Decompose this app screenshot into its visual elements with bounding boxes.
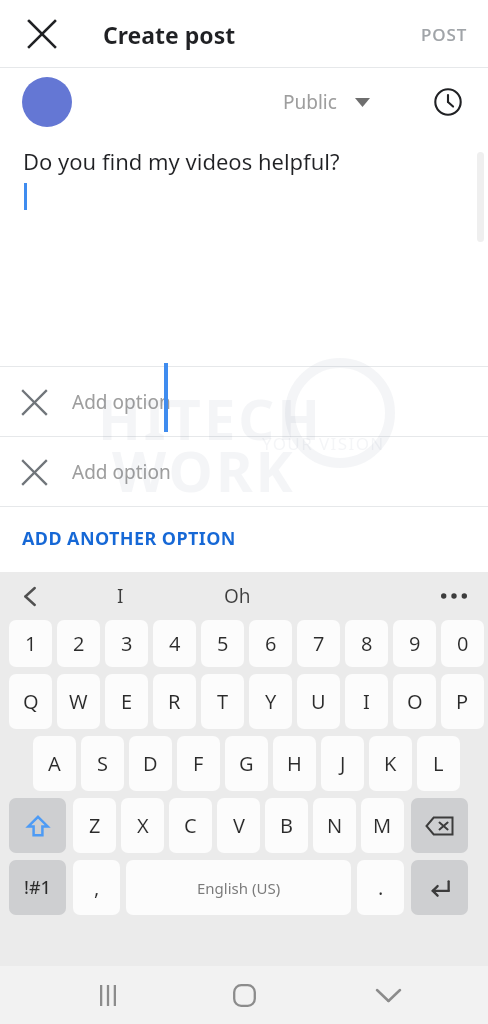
button[interactable]: Close: [17, 9, 67, 59]
button[interactable]: F: [177, 736, 220, 791]
button[interactable]: Enter: [411, 860, 468, 915]
button[interactable]: English (US): [126, 860, 351, 915]
button[interactable]: V: [217, 798, 260, 853]
button[interactable]: 6: [249, 620, 292, 667]
button[interactable]: Z: [73, 798, 116, 853]
button[interactable]: B: [265, 798, 308, 853]
button[interactable]: Remove option: [0, 437, 488, 506]
staticText: P: [456, 688, 469, 715]
button[interactable]: X: [121, 798, 164, 853]
button[interactable]: M: [361, 798, 404, 853]
button[interactable]: C: [169, 798, 212, 853]
button[interactable]: G: [225, 736, 268, 791]
button[interactable]: Public: [278, 81, 375, 123]
button[interactable]: I: [345, 674, 388, 729]
button[interactable]: ,: [73, 860, 120, 915]
button[interactable]: 0: [441, 620, 484, 667]
staticText: E: [121, 688, 133, 715]
button[interactable]: 3: [105, 620, 148, 667]
staticText: HITECH: [98, 380, 324, 456]
button[interactable]: Y: [249, 674, 292, 729]
staticText: 7: [313, 630, 325, 657]
button[interactable]: Hide keyboard: [364, 971, 412, 1019]
button[interactable]: J: [321, 736, 364, 791]
staticText: Q: [23, 688, 39, 715]
staticText: G: [239, 750, 254, 777]
staticText: 2: [73, 630, 85, 657]
staticText: J: [340, 750, 346, 777]
staticText: !#1: [24, 875, 51, 900]
button[interactable]: Shift: [9, 798, 66, 853]
button[interactable]: Previous suggestions: [9, 575, 51, 617]
button[interactable]: O: [393, 674, 436, 729]
button[interactable]: H: [273, 736, 316, 791]
button[interactable]: 5: [201, 620, 244, 667]
button[interactable]: Oh: [210, 576, 265, 616]
button[interactable]: P: [441, 674, 484, 729]
staticText: Oh: [224, 583, 251, 609]
staticText: 0: [457, 630, 469, 657]
button[interactable]: L: [417, 736, 460, 791]
staticText: Add option: [72, 459, 171, 485]
button[interactable]: E: [105, 674, 148, 729]
staticText: WORK: [112, 432, 296, 508]
staticText: V: [233, 812, 245, 839]
other: Remove option: [12, 380, 56, 424]
button[interactable]: Q: [9, 674, 52, 729]
button[interactable]: Profile picture: [22, 77, 72, 127]
staticText: Add option: [72, 389, 171, 415]
button[interactable]: Backspace: [411, 798, 468, 853]
button[interactable]: S: [81, 736, 124, 791]
staticText: D: [143, 750, 158, 777]
button[interactable]: 8: [345, 620, 388, 667]
staticText: 3: [121, 630, 133, 657]
button[interactable]: 9: [393, 620, 436, 667]
staticText: Do you find my videos helpful?: [23, 146, 340, 176]
button[interactable]: I: [103, 576, 138, 616]
staticText: YOUR VISION: [262, 432, 385, 455]
button[interactable]: More options: [433, 575, 475, 617]
staticText: B: [280, 812, 293, 839]
staticText: C: [184, 812, 197, 839]
staticText: 1: [25, 630, 37, 657]
staticText: T: [217, 688, 229, 715]
staticText: F: [193, 750, 204, 777]
staticText: 6: [265, 630, 277, 657]
staticText: 9: [409, 630, 421, 657]
button[interactable]: Remove option: [0, 367, 488, 436]
button[interactable]: Home: [220, 971, 268, 1019]
staticText: L: [433, 750, 444, 777]
staticText: .: [378, 874, 384, 901]
other: Remove option: [12, 450, 56, 494]
staticText: U: [311, 688, 326, 715]
button[interactable]: D: [129, 736, 172, 791]
staticText: Z: [89, 812, 101, 839]
button[interactable]: N: [313, 798, 356, 853]
button[interactable]: T: [201, 674, 244, 729]
button[interactable]: 1: [9, 620, 52, 667]
button[interactable]: .: [357, 860, 404, 915]
button[interactable]: Recents: [84, 971, 132, 1019]
button[interactable]: K: [369, 736, 412, 791]
staticText: Y: [265, 688, 277, 715]
button[interactable]: Do you find my videos helpful?: [0, 136, 488, 366]
staticText: 4: [169, 630, 181, 657]
button[interactable]: ADD ANOTHER OPTION: [9, 517, 249, 560]
button[interactable]: !#1: [9, 860, 66, 915]
button[interactable]: 2: [57, 620, 100, 667]
button[interactable]: POST: [408, 11, 481, 58]
staticText: 5: [217, 630, 229, 657]
button[interactable]: A: [33, 736, 76, 791]
button[interactable]: W: [57, 674, 100, 729]
button[interactable]: 4: [153, 620, 196, 667]
staticText: POST: [421, 23, 468, 46]
staticText: H: [287, 750, 302, 777]
staticText: English (US): [197, 878, 281, 898]
button[interactable]: 7: [297, 620, 340, 667]
staticText: Public: [283, 89, 337, 115]
staticText: O: [407, 688, 423, 715]
button[interactable]: U: [297, 674, 340, 729]
staticText: K: [384, 750, 397, 777]
button[interactable]: R: [153, 674, 196, 729]
button[interactable]: Schedule post: [426, 80, 470, 124]
